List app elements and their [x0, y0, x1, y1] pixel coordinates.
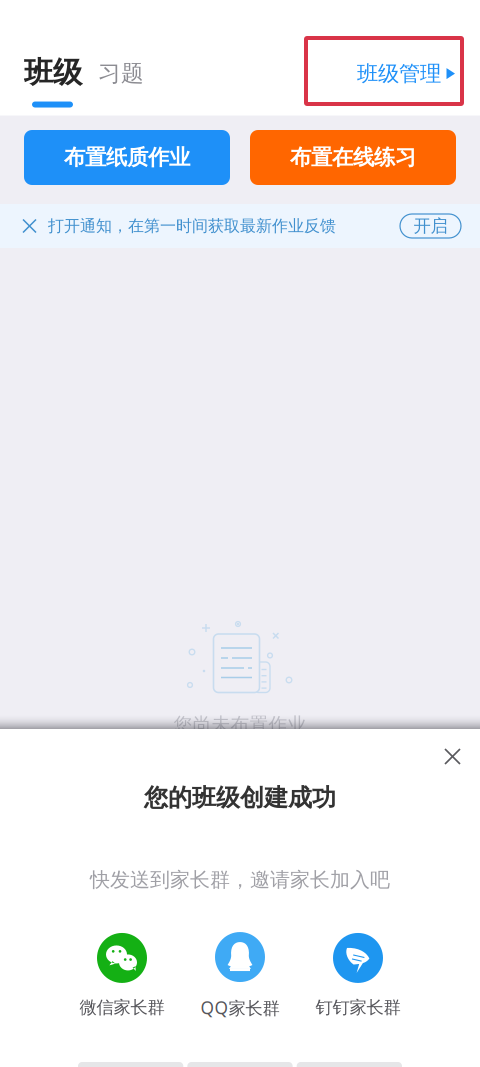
- staticText: 班级管理: [357, 60, 441, 87]
- button[interactable]: 布置纸质作业: [24, 130, 230, 185]
- button[interactable]: 微信家长群: [69, 933, 175, 1018]
- staticText: 习题: [98, 59, 144, 87]
- button[interactable]: QQ家长群: [187, 932, 293, 1019]
- staticText: 布置在线练习: [290, 144, 416, 171]
- button[interactable]: 班级: [24, 54, 82, 107]
- button[interactable]: 关闭提示: [0, 209, 48, 242]
- button[interactable]: 钉钉家长群: [305, 933, 411, 1018]
- staticText: 快发送到家长群，邀请家长加入吧: [90, 867, 390, 892]
- staticText: QQ家长群: [200, 996, 279, 1019]
- staticText: 钉钉家长群: [315, 997, 400, 1018]
- button[interactable]: 班级管理: [357, 60, 455, 87]
- staticText: 您尚未布置作业: [173, 713, 306, 736]
- staticText: 开启: [413, 215, 447, 237]
- staticText: 班级: [24, 54, 82, 90]
- button[interactable]: 关闭: [435, 739, 470, 774]
- button[interactable]: 习题: [98, 59, 144, 87]
- staticText: 您的班级创建成功: [144, 783, 336, 812]
- staticText: 打开通知，在第一时间获取最新作业反馈: [48, 216, 336, 236]
- button[interactable]: 布置在线练习: [250, 130, 456, 185]
- button[interactable]: 开启: [400, 214, 461, 238]
- staticText: 微信家长群: [79, 997, 164, 1018]
- staticText: 布置纸质作业: [64, 144, 190, 171]
- button[interactable]: 保存图片: [187, 1062, 293, 1067]
